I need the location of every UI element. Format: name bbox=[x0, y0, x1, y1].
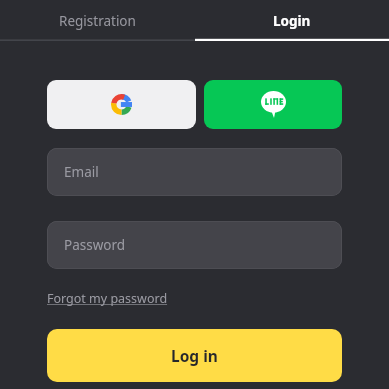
staticText: Log in bbox=[171, 345, 218, 366]
staticText: Forgot my password bbox=[47, 290, 168, 307]
button[interactable]: Registration bbox=[0, 0, 195, 41]
button[interactable]: Email bbox=[47, 148, 342, 196]
button[interactable]: Log in bbox=[47, 329, 342, 382]
button[interactable]: Sign in with LINE bbox=[204, 80, 342, 129]
button[interactable]: Password bbox=[47, 221, 342, 269]
button[interactable]: Login bbox=[195, 0, 389, 41]
staticText: Login bbox=[273, 12, 311, 30]
button[interactable]: Forgot my password bbox=[47, 290, 168, 307]
staticText: Password bbox=[64, 236, 126, 254]
staticText: Registration bbox=[59, 12, 136, 30]
button[interactable]: Sign in with Google bbox=[47, 80, 196, 129]
staticText: Email bbox=[64, 163, 99, 181]
